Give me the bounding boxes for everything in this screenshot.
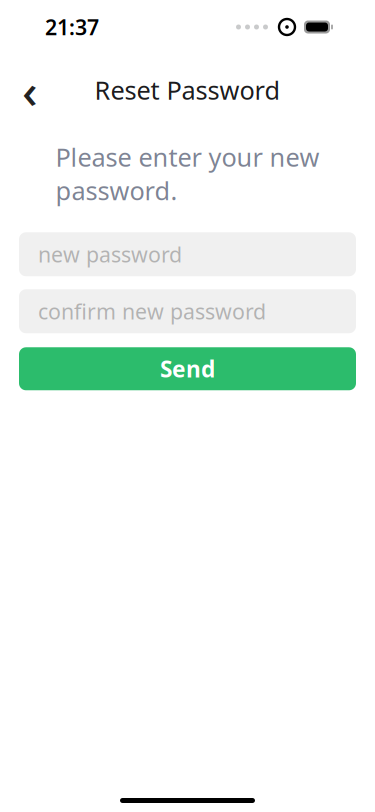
staticText: confirm new password: [38, 297, 266, 325]
staticText: Please enter your new password.: [55, 140, 319, 207]
button[interactable]: confirm new password: [19, 289, 356, 333]
staticText: new password: [38, 240, 182, 268]
button[interactable]: Send: [19, 347, 356, 390]
staticText: Reset Password: [94, 73, 280, 107]
staticText: Send: [160, 354, 215, 384]
staticText: ‹: [22, 58, 38, 122]
staticText: 21:37: [45, 13, 99, 41]
button[interactable]: Back: [8, 68, 52, 112]
button[interactable]: new password: [19, 232, 356, 276]
